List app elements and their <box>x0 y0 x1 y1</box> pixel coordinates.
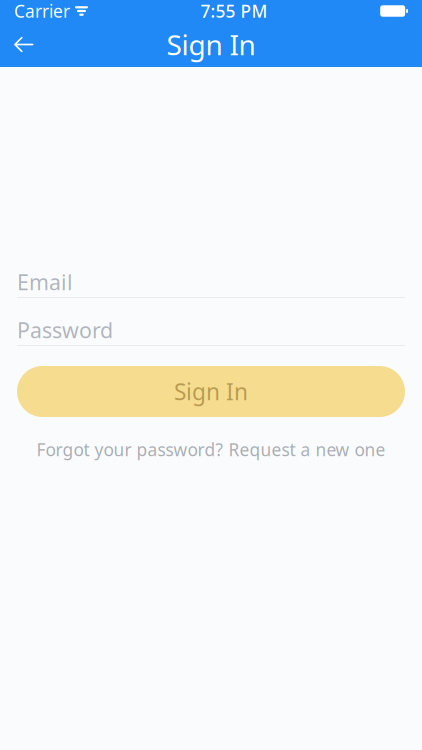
staticText: Sign In <box>166 26 255 63</box>
staticText: Email <box>17 268 73 296</box>
button[interactable]: Forgot your password? Request a new one <box>0 438 422 461</box>
staticText: Forgot your password? Request a new one <box>36 438 385 461</box>
staticText: Carrier <box>14 0 70 22</box>
staticText: Password <box>17 316 113 344</box>
button[interactable]: Sign In <box>17 366 405 417</box>
staticText: Sign In <box>174 376 248 406</box>
staticText: 7:55 PM <box>201 0 268 22</box>
button[interactable]: Back <box>0 22 48 66</box>
